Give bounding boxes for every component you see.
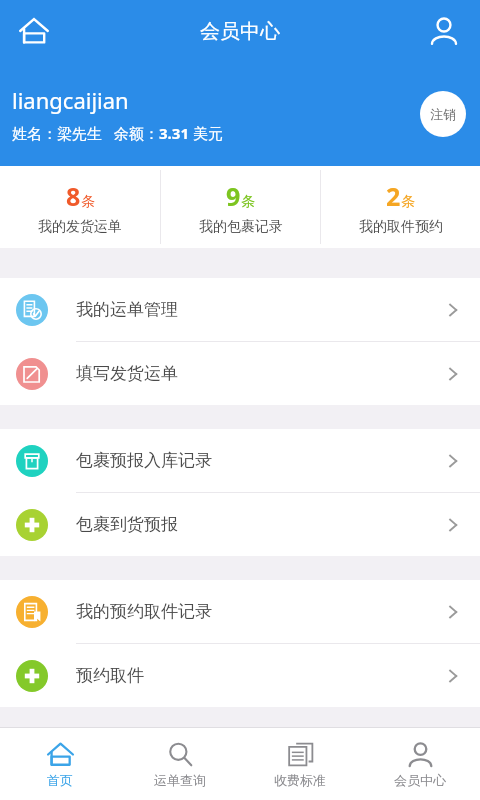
staticText: 我的运单管理: [76, 299, 444, 320]
staticText: 3.31: [159, 123, 189, 143]
staticText: 运单查询: [154, 772, 206, 788]
button[interactable]: 包裹预报入库记录: [0, 429, 480, 492]
button[interactable]: 收费标准: [240, 728, 360, 800]
staticText: liangcaijian: [12, 85, 129, 115]
button[interactable]: 我的预约取件记录: [0, 580, 480, 643]
button[interactable]: 注销: [420, 91, 466, 137]
staticText: 美元: [189, 123, 223, 143]
staticText: 会员中心: [200, 19, 280, 44]
button[interactable]: 填写发货运单: [0, 342, 480, 405]
staticText: 条: [401, 193, 415, 211]
staticText: 2: [386, 179, 401, 213]
staticText: 注销: [430, 106, 456, 122]
button[interactable]: 8: [0, 166, 160, 248]
button[interactable]: 2: [321, 166, 480, 248]
button[interactable]: 运单查询: [120, 728, 240, 800]
staticText: 包裹到货预报: [76, 514, 444, 535]
staticText: 收费标准: [274, 772, 326, 788]
button[interactable]: 包裹到货预报: [0, 493, 480, 556]
staticText: 预约取件: [76, 665, 444, 686]
staticText: 首页: [47, 772, 73, 788]
button[interactable]: Home: [8, 5, 60, 57]
staticText: 条: [81, 193, 95, 211]
button[interactable]: 我的运单管理: [0, 278, 480, 341]
button[interactable]: Account: [418, 5, 470, 57]
staticText: 我的预约取件记录: [76, 601, 444, 622]
staticText: 姓名：梁先生 余额：: [12, 123, 159, 143]
staticText: 我的包裹记录: [199, 218, 283, 236]
staticText: 8: [66, 179, 81, 213]
staticText: 9: [226, 179, 241, 213]
button[interactable]: 首页: [0, 728, 120, 800]
staticText: 会员中心: [394, 772, 446, 788]
staticText: 包裹预报入库记录: [76, 450, 444, 471]
button[interactable]: 会员中心: [360, 728, 480, 800]
staticText: 填写发货运单: [76, 363, 444, 384]
staticText: 我的取件预约: [359, 218, 443, 236]
staticText: 我的发货运单: [38, 218, 122, 236]
button[interactable]: 9: [161, 166, 320, 248]
button[interactable]: 预约取件: [0, 644, 480, 707]
staticText: 条: [241, 193, 255, 211]
